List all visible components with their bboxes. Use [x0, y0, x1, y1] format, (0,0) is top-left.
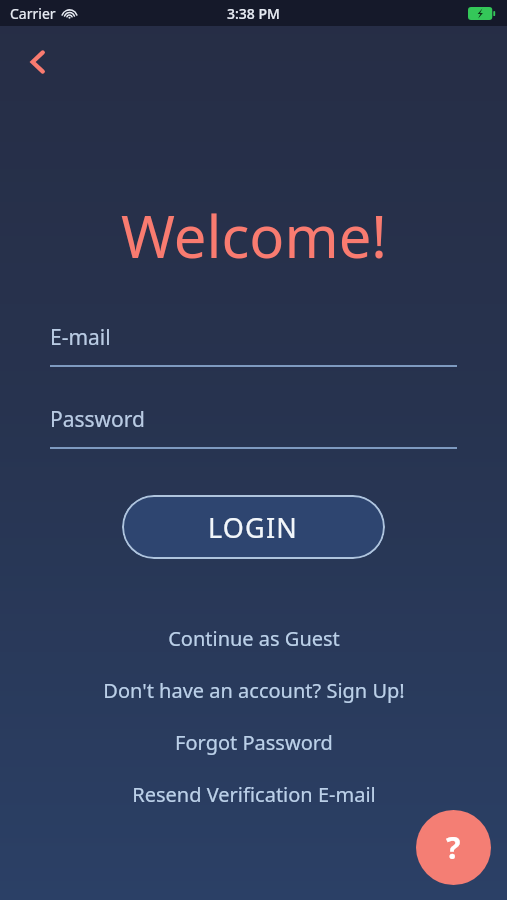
- staticText: Welcome!: [121, 196, 387, 275]
- button[interactable]: Continue as Guest: [20, 621, 487, 655]
- button[interactable]: E-mail: [50, 323, 457, 367]
- staticText: Forgot Password: [175, 729, 333, 756]
- button[interactable]: Password: [50, 405, 457, 449]
- staticText: Continue as Guest: [168, 625, 340, 652]
- staticText: Resend Verification E-mail: [132, 781, 376, 808]
- staticText: Carrier: [10, 4, 56, 23]
- button[interactable]: Resend Verification E-mail: [20, 777, 487, 811]
- button[interactable]: Don't have an account? Sign Up!: [20, 673, 487, 707]
- staticText: Don't have an account? Sign Up!: [103, 677, 405, 704]
- staticText: LOGIN: [208, 509, 299, 546]
- button[interactable]: Forgot Password: [20, 725, 487, 759]
- button[interactable]: Back: [12, 36, 64, 88]
- staticText: ?: [446, 827, 461, 868]
- staticText: E-mail: [50, 323, 111, 352]
- staticText: Password: [50, 405, 145, 434]
- button[interactable]: LOGIN: [122, 495, 385, 559]
- button[interactable]: Help: [416, 810, 491, 885]
- staticText: 3:38 PM: [227, 4, 280, 23]
